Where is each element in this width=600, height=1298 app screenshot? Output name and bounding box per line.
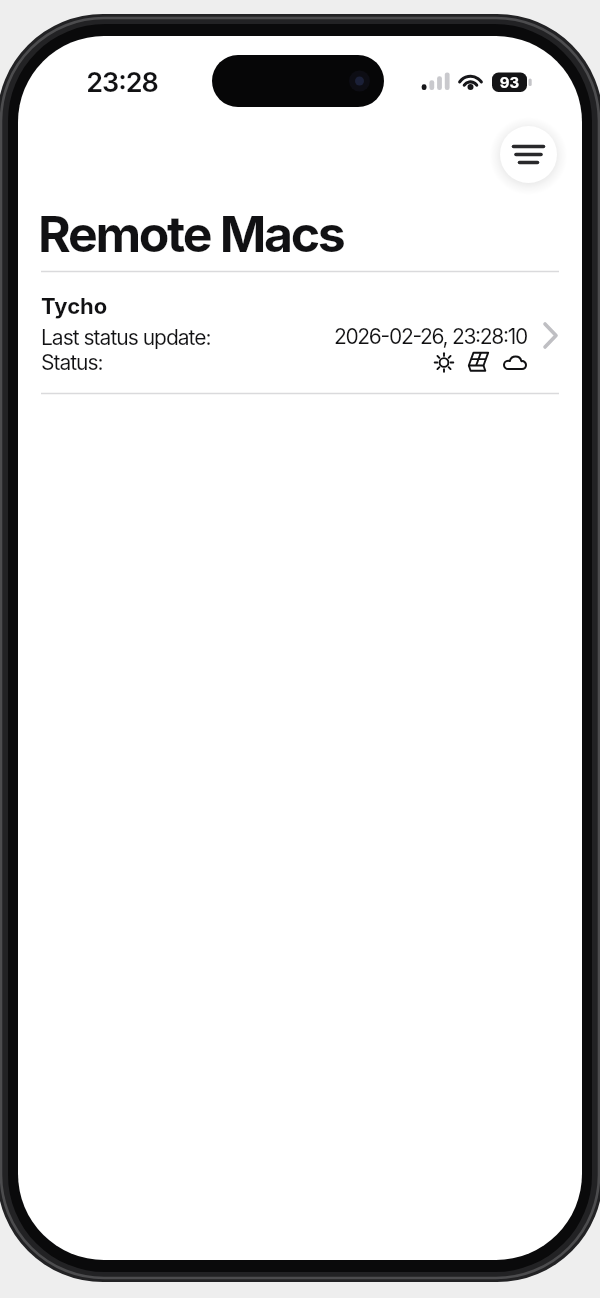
staticText: Tycho (41, 293, 108, 320)
button[interactable]: Tycho (41, 284, 559, 393)
staticText: Status: (41, 350, 103, 375)
staticText: 93 (492, 73, 527, 91)
staticText: 2026-02-26, 23:28:10 (277, 324, 527, 349)
staticText: 23:28 (77, 66, 167, 99)
button[interactable] (500, 126, 557, 183)
staticText: Last status update: (41, 325, 211, 350)
staticText: Remote Macs (38, 204, 344, 264)
